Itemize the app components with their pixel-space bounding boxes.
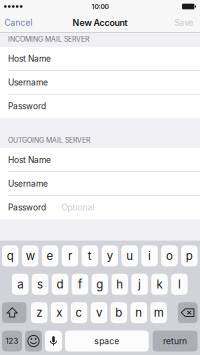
- button[interactable]: x: [51, 302, 67, 323]
- button[interactable]: Emoji: [25, 331, 42, 352]
- staticText: Password: [8, 101, 46, 111]
- staticText: v: [96, 306, 102, 320]
- button[interactable]: Username: [0, 71, 200, 94]
- staticText: Host Name: [8, 54, 51, 64]
- staticText: w: [26, 249, 35, 263]
- staticText: space: [94, 336, 119, 346]
- staticText: b: [115, 306, 122, 320]
- button[interactable]: space: [65, 331, 149, 352]
- button[interactable]: Host Name: [0, 148, 200, 171]
- staticText: a: [17, 277, 23, 291]
- button[interactable]: e: [42, 245, 58, 266]
- button[interactable]: g: [91, 274, 108, 295]
- button[interactable]: q: [2, 245, 18, 266]
- button[interactable]: i: [141, 245, 158, 266]
- staticText: x: [56, 306, 62, 320]
- button[interactable]: a: [12, 274, 28, 295]
- button[interactable]: 123: [2, 331, 22, 352]
- button[interactable]: n: [130, 302, 147, 323]
- staticText: return: [163, 336, 187, 346]
- staticText: d: [56, 277, 63, 291]
- staticText: n: [135, 306, 142, 320]
- button[interactable]: k: [151, 274, 168, 295]
- staticText: q: [7, 249, 14, 263]
- staticText: g: [96, 277, 103, 291]
- button[interactable]: y: [101, 245, 118, 266]
- staticText: o: [166, 249, 173, 263]
- staticText: y: [107, 249, 113, 263]
- button[interactable]: Dictation: [45, 331, 62, 352]
- button[interactable]: h: [111, 274, 128, 295]
- staticText: f: [78, 277, 82, 291]
- staticText: r: [68, 249, 72, 263]
- button[interactable]: Password: [0, 196, 200, 219]
- staticText: New Account: [72, 17, 127, 28]
- button[interactable]: r: [62, 245, 78, 266]
- button[interactable]: p: [181, 245, 198, 266]
- staticText: Save: [174, 18, 193, 28]
- button[interactable]: Username: [0, 172, 200, 195]
- staticText: p: [186, 249, 193, 263]
- staticText: k: [156, 277, 162, 291]
- staticText: m: [154, 306, 164, 320]
- button[interactable]: u: [121, 245, 138, 266]
- staticText: h: [116, 277, 123, 291]
- button[interactable]: z: [31, 302, 47, 323]
- staticText: OUTGOING MAIL SERVER: [8, 136, 90, 144]
- button[interactable]: Delete: [178, 302, 198, 323]
- button[interactable]: m: [150, 302, 167, 323]
- button[interactable]: l: [171, 274, 188, 295]
- button[interactable]: Save: [167, 13, 200, 32]
- staticText: 123: [5, 336, 18, 346]
- button[interactable]: b: [111, 302, 127, 323]
- staticText: 10:00: [91, 2, 108, 11]
- button[interactable]: f: [72, 274, 88, 295]
- button[interactable]: Host Name: [0, 47, 200, 70]
- button[interactable]: t: [82, 245, 98, 266]
- staticText: l: [178, 277, 181, 291]
- button[interactable]: o: [161, 245, 178, 266]
- staticText: Username: [8, 77, 48, 88]
- staticText: i: [148, 249, 151, 263]
- staticText: Username: [8, 179, 48, 189]
- button[interactable]: d: [52, 274, 68, 295]
- button[interactable]: Shift: [2, 302, 26, 323]
- staticText: s: [37, 277, 43, 291]
- staticText: Optional: [61, 202, 94, 213]
- staticText: Host Name: [8, 155, 51, 165]
- button[interactable]: return: [153, 331, 198, 352]
- staticText: e: [46, 249, 53, 263]
- button[interactable]: Cancel: [0, 13, 39, 32]
- button[interactable]: v: [91, 302, 107, 323]
- button[interactable]: w: [22, 245, 38, 266]
- button[interactable]: Password: [0, 95, 200, 118]
- staticText: u: [126, 249, 133, 263]
- staticText: Password: [8, 202, 46, 213]
- button[interactable]: s: [32, 274, 48, 295]
- button[interactable]: j: [131, 274, 148, 295]
- staticText: INCOMING MAIL SERVER: [8, 35, 89, 43]
- staticText: t: [88, 249, 92, 263]
- staticText: c: [75, 306, 82, 320]
- staticText: j: [138, 277, 141, 291]
- staticText: Cancel: [4, 18, 32, 28]
- staticText: z: [36, 306, 42, 320]
- button[interactable]: c: [71, 302, 87, 323]
